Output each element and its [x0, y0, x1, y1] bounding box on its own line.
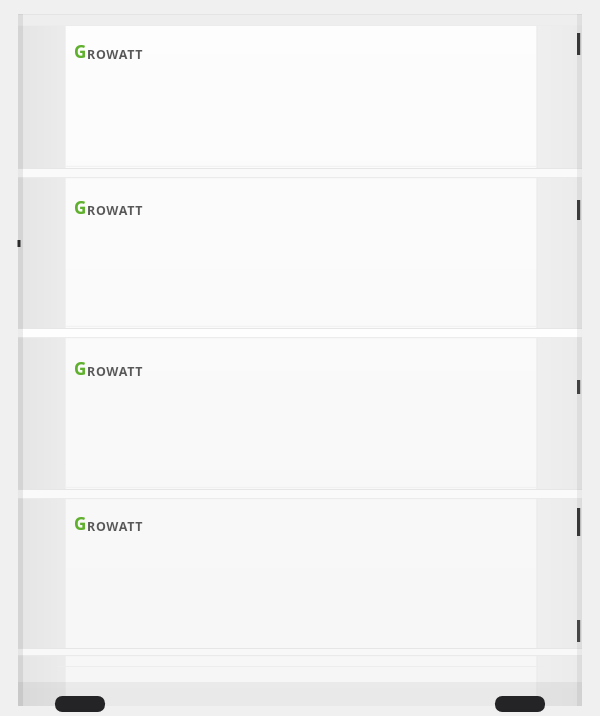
button[interactable]: G — [74, 512, 144, 535]
staticText: ROWATT — [87, 518, 144, 535]
staticText: G — [74, 512, 87, 535]
button[interactable]: Growatt stacked battery system — [0, 0, 600, 716]
staticText: ROWATT — [87, 363, 144, 380]
staticText: G — [74, 40, 87, 63]
staticText: ROWATT — [87, 46, 144, 63]
button[interactable]: G — [74, 40, 144, 63]
button[interactable]: G — [74, 357, 144, 380]
button[interactable]: G — [74, 196, 144, 219]
staticText: G — [74, 196, 87, 219]
staticText: G — [74, 357, 87, 380]
staticText: ROWATT — [87, 202, 144, 219]
